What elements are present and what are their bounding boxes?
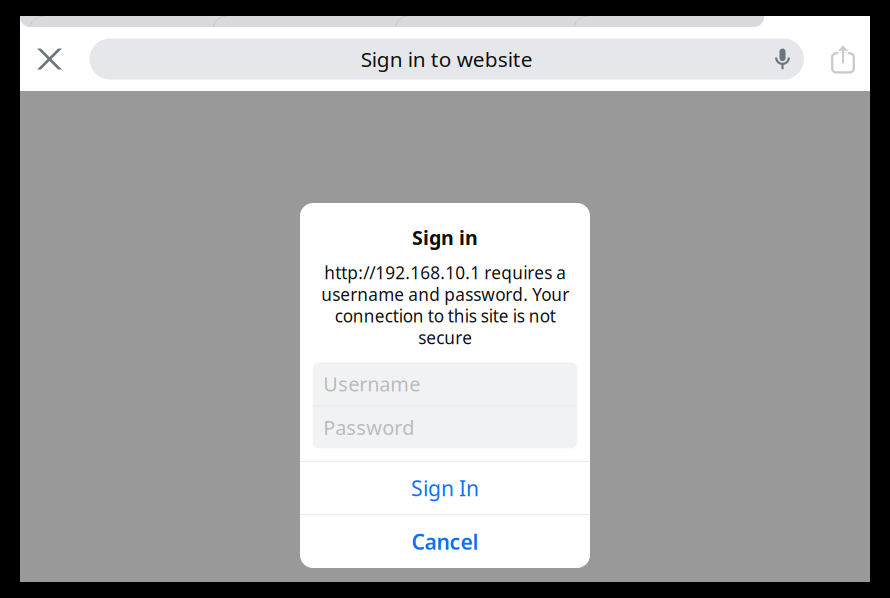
staticText: Sign In xyxy=(411,474,479,502)
button[interactable]: Close xyxy=(25,35,73,83)
staticText: Password xyxy=(323,414,414,441)
button[interactable]: Cancel xyxy=(300,515,590,568)
staticText: Sign in xyxy=(412,224,478,251)
button[interactable]: Voice search xyxy=(765,38,799,79)
staticText: http://192.168.10.1 requires a username … xyxy=(321,262,569,348)
staticText: Cancel xyxy=(411,527,478,556)
staticText: Username xyxy=(323,370,420,397)
button[interactable]: Share xyxy=(821,35,865,83)
staticText: Sign in to website xyxy=(361,45,533,73)
button[interactable]: Sign In xyxy=(300,462,590,514)
